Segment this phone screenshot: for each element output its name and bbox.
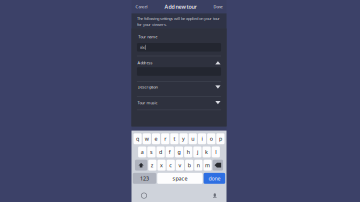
button[interactable]: n xyxy=(194,160,202,171)
button[interactable]: i xyxy=(198,133,206,144)
button[interactable]: m xyxy=(203,160,212,171)
staticText: t xyxy=(173,135,175,142)
staticText: Tour music xyxy=(137,100,157,105)
button[interactable]: x xyxy=(157,160,166,171)
staticText: Add new tour xyxy=(164,3,196,10)
button[interactable]: z xyxy=(148,160,156,171)
button[interactable]: Shift xyxy=(135,160,147,171)
staticText: b xyxy=(188,162,191,169)
button[interactable]: o xyxy=(207,133,215,144)
staticText: Tour name xyxy=(138,34,157,39)
button[interactable]: c xyxy=(167,160,175,171)
staticText: e xyxy=(154,135,157,142)
button[interactable]: Cancel xyxy=(134,2,148,11)
button[interactable]: k xyxy=(202,146,211,157)
button[interactable]: Dictate xyxy=(213,193,217,199)
button[interactable]: f xyxy=(166,146,174,157)
button[interactable]: w xyxy=(143,133,151,144)
staticText: j xyxy=(197,148,198,155)
staticText: m xyxy=(205,162,210,169)
staticText: Done xyxy=(213,4,222,9)
button[interactable]: v xyxy=(176,160,184,171)
staticText: k xyxy=(205,148,208,155)
staticText: h xyxy=(187,148,190,155)
button[interactable]: Description xyxy=(131,82,226,91)
staticText: g xyxy=(177,148,180,155)
button[interactable]: j xyxy=(193,146,201,157)
staticText: Description xyxy=(137,84,157,90)
button[interactable]: g xyxy=(175,146,183,157)
staticText: a xyxy=(141,148,144,155)
staticText: p xyxy=(219,135,222,142)
button[interactable]: a xyxy=(138,146,146,157)
staticText: w xyxy=(145,135,149,142)
button[interactable]: Tour music xyxy=(131,98,226,107)
staticText: n xyxy=(197,162,200,169)
staticText: o xyxy=(210,135,213,142)
button[interactable]: abc xyxy=(137,43,221,52)
staticText: c xyxy=(169,162,172,169)
staticText: u xyxy=(191,135,194,142)
staticText: abc xyxy=(139,45,145,50)
button[interactable]: u xyxy=(189,133,197,144)
button[interactable]: Delete xyxy=(213,160,223,171)
button[interactable]: done xyxy=(204,173,225,184)
staticText: d xyxy=(159,148,162,155)
staticText: q xyxy=(136,135,139,142)
button[interactable]: Address xyxy=(131,58,226,67)
button[interactable]: y xyxy=(179,133,188,144)
staticText: for your viewers. xyxy=(137,22,167,27)
staticText: done xyxy=(208,175,220,182)
button[interactable]: s xyxy=(147,146,155,157)
staticText: v xyxy=(178,162,181,169)
button[interactable]: r xyxy=(161,133,169,144)
button[interactable]: q xyxy=(133,133,142,144)
button[interactable]: e xyxy=(152,133,160,144)
button[interactable]: p xyxy=(216,133,224,144)
staticText: The following settings will be applied o… xyxy=(137,16,220,21)
button[interactable]: h xyxy=(184,146,192,157)
button[interactable]: t xyxy=(170,133,178,144)
button[interactable]: Emoji keyboard xyxy=(141,193,147,199)
staticText: x xyxy=(160,162,163,169)
button[interactable]: b xyxy=(185,160,193,171)
staticText: s xyxy=(150,148,153,155)
staticText: Address xyxy=(137,60,152,65)
button[interactable]: Done xyxy=(212,2,223,11)
staticText: space xyxy=(172,175,187,182)
button[interactable]: space xyxy=(157,173,203,184)
staticText: r xyxy=(164,135,166,142)
button[interactable]: 123 xyxy=(133,173,156,184)
button[interactable]: d xyxy=(156,146,165,157)
staticText: 123 xyxy=(140,175,149,182)
staticText: Cancel xyxy=(135,4,147,9)
button[interactable]: l xyxy=(212,146,220,157)
staticText: z xyxy=(151,162,154,169)
staticText: f xyxy=(169,148,171,155)
staticText: l xyxy=(215,148,216,155)
staticText: y xyxy=(182,135,185,142)
